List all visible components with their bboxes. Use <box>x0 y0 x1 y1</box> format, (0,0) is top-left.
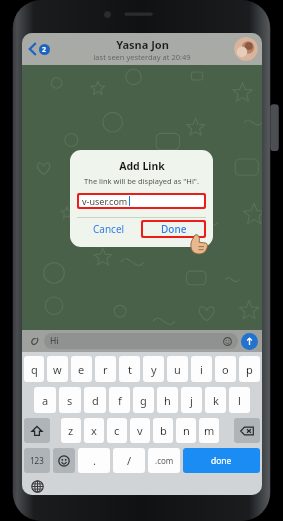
staticText: y <box>151 362 157 377</box>
button[interactable]: Hi <box>44 333 238 349</box>
button[interactable]: done <box>183 448 260 473</box>
button[interactable]: Send <box>241 333 258 350</box>
staticText: k <box>213 393 219 408</box>
button[interactable]: r <box>95 356 116 382</box>
button[interactable]: f <box>109 387 130 413</box>
button[interactable]: Attach <box>26 333 42 349</box>
button[interactable]: . <box>78 448 110 473</box>
button[interactable]: t <box>119 356 140 382</box>
staticText: n <box>183 423 190 438</box>
staticText: m <box>204 423 215 438</box>
button[interactable]: Shift <box>24 418 50 443</box>
button[interactable]: h <box>157 387 178 413</box>
button[interactable]: / <box>113 448 145 473</box>
button[interactable]: o <box>215 356 236 382</box>
staticText: w <box>53 362 62 377</box>
button[interactable]: Change language <box>28 477 46 495</box>
button[interactable]: k <box>205 387 226 413</box>
staticText: / <box>127 453 132 468</box>
button[interactable]: g <box>133 387 154 413</box>
button[interactable]: n <box>176 418 196 443</box>
button[interactable]: v <box>130 418 150 443</box>
staticText: l <box>238 393 241 408</box>
button[interactable]: d <box>84 387 106 413</box>
button[interactable]: j <box>181 387 202 413</box>
staticText: 2 <box>42 45 47 55</box>
button[interactable]: i <box>191 356 212 382</box>
staticText: last seen yesterday at 20:49 <box>93 52 191 62</box>
button[interactable]: v-user.com <box>79 195 204 207</box>
button[interactable]: p <box>239 356 260 382</box>
button[interactable]: a <box>34 387 56 413</box>
staticText: Done <box>161 222 187 236</box>
staticText: 123 <box>30 455 44 466</box>
button[interactable]: z <box>61 418 81 443</box>
staticText: f <box>118 393 122 408</box>
staticText: p <box>246 362 253 377</box>
button[interactable]: x <box>84 418 104 443</box>
button[interactable]: Profile photo <box>234 37 258 61</box>
button[interactable]: Backspace <box>234 418 260 443</box>
button[interactable]: .com <box>148 448 180 473</box>
staticText: Add Link <box>119 159 165 173</box>
button[interactable]: Done <box>143 222 204 236</box>
staticText: t <box>128 362 132 377</box>
staticText: u <box>174 362 181 377</box>
staticText: .com <box>155 455 174 466</box>
staticText: j <box>190 393 193 408</box>
staticText: x <box>91 423 97 438</box>
other: Emoji <box>223 337 232 346</box>
staticText: s <box>67 393 73 408</box>
button[interactable]: y <box>143 356 164 382</box>
staticText: z <box>68 423 74 438</box>
button[interactable]: l <box>229 387 250 413</box>
staticText: . <box>93 453 96 468</box>
button[interactable]: s <box>59 387 81 413</box>
staticText: q <box>31 362 38 377</box>
button[interactable]: b <box>153 418 173 443</box>
button[interactable]: e <box>71 356 92 382</box>
staticText: v <box>137 423 143 438</box>
staticText: r <box>103 362 108 377</box>
staticText: The link will be displayed as "Hi". <box>84 176 199 186</box>
staticText: h <box>164 393 171 408</box>
button[interactable]: u <box>167 356 188 382</box>
staticText: b <box>160 423 167 438</box>
button[interactable]: w <box>47 356 68 382</box>
staticText: Yasna Jon <box>116 37 169 52</box>
button[interactable]: Back <box>27 39 52 59</box>
staticText: a <box>42 393 49 408</box>
button[interactable]: 123 <box>24 448 50 473</box>
button[interactable]: Emoji keyboard <box>53 448 75 473</box>
staticText: e <box>78 362 85 377</box>
staticText: Hi <box>50 335 59 347</box>
button[interactable]: m <box>199 418 219 443</box>
button[interactable]: Cancel <box>77 218 141 240</box>
staticText: Cancel <box>93 222 125 236</box>
button[interactable]: q <box>24 356 44 382</box>
staticText: d <box>92 393 99 408</box>
staticText: c <box>114 423 120 438</box>
staticText: g <box>140 393 147 408</box>
staticText: o <box>222 362 229 377</box>
staticText: i <box>200 362 203 377</box>
staticText: v-user.com <box>82 195 128 207</box>
button[interactable]: c <box>107 418 127 443</box>
staticText: done <box>211 455 232 467</box>
